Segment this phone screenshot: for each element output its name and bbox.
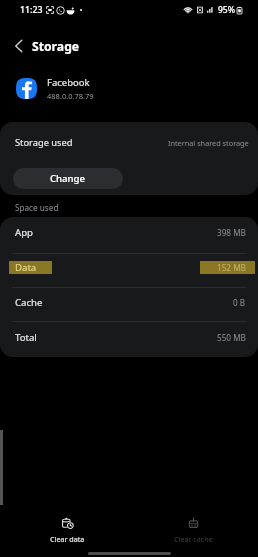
staticText: 398 MB <box>217 227 246 238</box>
button[interactable]: Clear data <box>5 512 130 548</box>
staticText: Internal shared storage <box>168 138 249 148</box>
staticText: 0 B <box>233 297 246 308</box>
staticText: 488.0.0.78.79 <box>47 91 94 101</box>
button[interactable]: Back <box>8 35 30 57</box>
staticText: 11:23 <box>20 4 43 16</box>
button[interactable]: Change <box>13 168 123 189</box>
staticText: Cache <box>15 296 43 309</box>
staticText: Facebook <box>47 76 90 89</box>
staticText: Storage used <box>15 136 73 149</box>
button[interactable]: Data <box>0 252 258 285</box>
button[interactable]: Clear cache <box>130 512 256 548</box>
staticText: Data <box>15 261 37 274</box>
button[interactable]: App <box>0 217 258 249</box>
staticText: Clear data <box>50 534 85 544</box>
button[interactable]: Total <box>0 322 258 355</box>
staticText: Clear cache <box>174 534 213 544</box>
button[interactable]: Cache <box>0 287 258 320</box>
staticText: Space used <box>15 202 59 213</box>
staticText: Storage <box>32 38 80 55</box>
staticText: 95% <box>218 4 235 16</box>
staticText: 152 MB <box>217 262 246 273</box>
staticText: 550 MB <box>217 332 246 343</box>
staticText: Total <box>15 331 37 344</box>
staticText: Change <box>50 172 86 185</box>
staticText: App <box>15 226 33 239</box>
